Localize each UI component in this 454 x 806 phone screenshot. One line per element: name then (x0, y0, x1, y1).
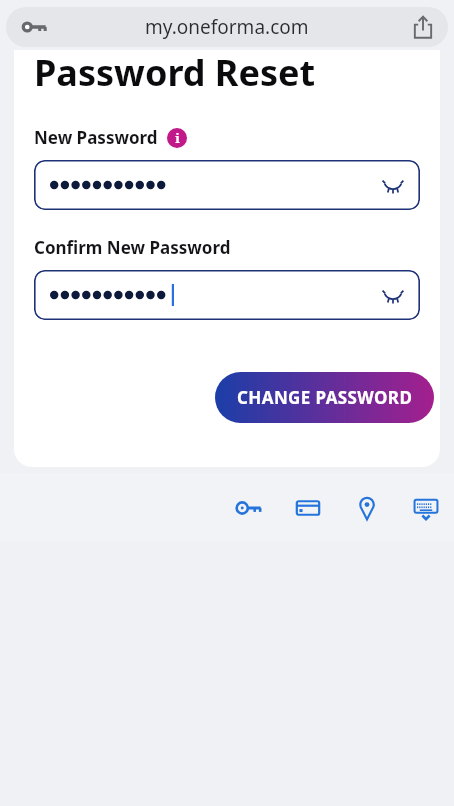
button[interactable]: Password requirements info (167, 128, 187, 148)
button[interactable]: Show password (34, 270, 420, 320)
button[interactable]: Share (404, 8, 442, 46)
staticText: CHANGE PASSWORD (237, 386, 413, 409)
button[interactable]: Passwords (233, 492, 265, 524)
staticText: Confirm New Password (34, 236, 231, 259)
staticText: Password Reset (34, 50, 316, 97)
button[interactable]: Site security (6, 7, 448, 47)
button[interactable]: Show password (376, 278, 410, 312)
button[interactable]: Hide keyboard (410, 492, 442, 524)
button[interactable]: Show password (376, 168, 410, 202)
button[interactable]: Show password (34, 160, 420, 210)
staticText: my.oneforma.com (145, 14, 309, 40)
button[interactable]: Payment methods (292, 492, 324, 524)
button[interactable]: CHANGE PASSWORD (215, 372, 434, 423)
button[interactable]: Addresses (351, 492, 383, 524)
button[interactable]: Site security (14, 7, 54, 47)
staticText: New Password (34, 126, 158, 149)
staticText: i (175, 129, 180, 147)
